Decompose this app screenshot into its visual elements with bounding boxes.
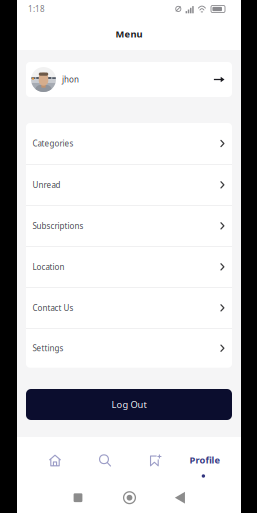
staticText: Profile [189,454,220,466]
staticText: Log Out [111,398,146,411]
staticText: Categories [32,138,73,149]
button[interactable]: Unread [26,165,232,206]
button[interactable]: Home [30,440,80,481]
button[interactable]: Contact Us [26,288,232,329]
staticText: Subscriptions [32,220,83,231]
button[interactable]: Saved [130,440,180,481]
button[interactable]: Profile [180,440,230,481]
staticText: Location [32,261,64,272]
button[interactable]: jhon [26,62,232,97]
button[interactable]: Home [118,487,140,509]
staticText: 1:18 [28,4,45,14]
staticText: Contact Us [32,302,73,313]
staticText: Unread [32,179,60,190]
staticText: Menu [115,28,142,40]
button[interactable]: Search [80,440,130,481]
button[interactable]: Location [26,247,232,288]
button[interactable]: Subscriptions [26,206,232,247]
button[interactable]: Log Out [26,389,232,420]
button[interactable]: Recent apps [67,487,89,509]
button[interactable]: Back [169,487,191,509]
button[interactable]: Settings [26,329,232,368]
button[interactable]: Categories [26,123,232,165]
staticText: jhon [62,74,79,85]
staticText: Settings [32,343,63,353]
